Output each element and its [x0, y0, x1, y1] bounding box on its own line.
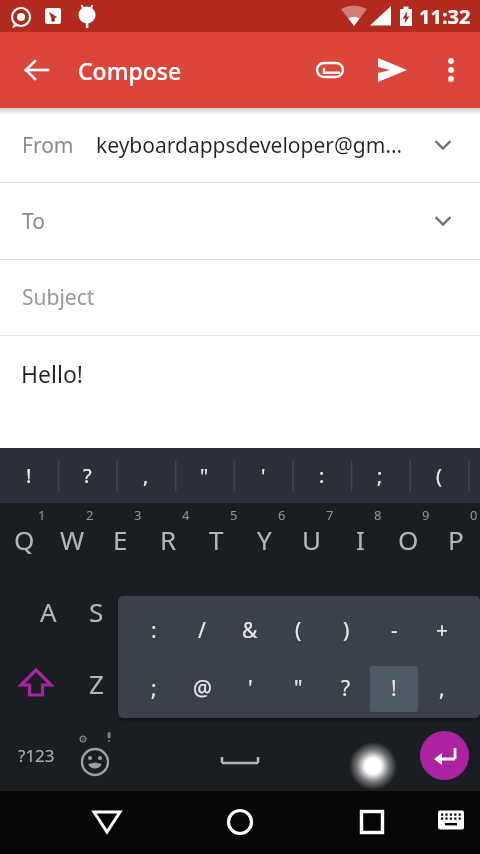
- button[interactable]: :: [130, 604, 178, 656]
- button[interactable]: [214, 796, 266, 848]
- staticText: 1: [38, 506, 46, 524]
- staticText: P: [448, 522, 464, 557]
- staticText: -: [391, 616, 398, 645]
- staticText: ): [343, 616, 350, 645]
- button[interactable]: P: [432, 503, 480, 575]
- button[interactable]: ;: [130, 662, 178, 714]
- staticText: T: [209, 522, 224, 557]
- staticText: &: [242, 616, 258, 645]
- button[interactable]: [346, 796, 398, 848]
- staticText: 6: [278, 506, 286, 524]
- button[interactable]: Hello!: [0, 336, 480, 448]
- staticText: ": [200, 462, 209, 489]
- staticText: From: [22, 131, 74, 160]
- button[interactable]: ,: [418, 662, 466, 714]
- button[interactable]: ?: [322, 662, 370, 714]
- staticText: U: [302, 522, 322, 557]
- staticText: 3: [134, 506, 142, 524]
- button[interactable]: O: [384, 503, 432, 575]
- staticText: Y: [257, 522, 272, 557]
- staticText: O: [398, 522, 419, 557]
- staticText: 4: [182, 506, 190, 524]
- staticText: To: [22, 207, 431, 236]
- button[interactable]: :: [293, 448, 351, 503]
- staticText: 0: [470, 506, 478, 524]
- button[interactable]: T: [192, 503, 240, 575]
- staticText: 8: [374, 506, 382, 524]
- button[interactable]: !: [0, 448, 58, 503]
- button[interactable]: ?: [58, 448, 116, 503]
- staticText: Hello!: [21, 358, 83, 389]
- button[interactable]: ;: [351, 448, 409, 503]
- button[interactable]: [14, 47, 60, 93]
- button[interactable]: /: [178, 604, 226, 656]
- staticText: ?: [341, 674, 351, 703]
- staticText: ": [294, 674, 303, 703]
- button[interactable]: @: [178, 662, 226, 714]
- button[interactable]: U: [288, 503, 336, 575]
- staticText: ,: [439, 674, 445, 703]
- staticText: ,: [143, 462, 149, 489]
- staticText: 11:32: [419, 3, 471, 30]
- button[interactable]: R: [144, 503, 192, 575]
- staticText: 5: [230, 506, 238, 524]
- staticText: ;: [151, 674, 157, 703]
- staticText: Q: [14, 522, 35, 557]
- button[interactable]: ': [226, 662, 274, 714]
- staticText: W: [60, 522, 85, 557]
- button[interactable]: From: [0, 108, 480, 182]
- button[interactable]: [428, 47, 474, 93]
- button[interactable]: +: [418, 604, 466, 656]
- staticText: ?123: [18, 744, 55, 767]
- staticText: :: [151, 616, 157, 645]
- button[interactable]: Y: [240, 503, 288, 575]
- button[interactable]: [81, 796, 133, 848]
- staticText: Z: [89, 666, 104, 701]
- staticText: Compose: [78, 55, 182, 86]
- button[interactable]: (: [410, 448, 468, 503]
- staticText: keyboardappsdeveloper@gm…: [96, 131, 431, 160]
- staticText: 9: [422, 506, 430, 524]
- button[interactable]: ": [274, 662, 322, 714]
- button[interactable]: &: [226, 604, 274, 656]
- staticText: ;: [377, 462, 383, 489]
- button[interactable]: ': [234, 448, 292, 503]
- button[interactable]: I: [336, 503, 384, 575]
- staticText: ': [261, 462, 266, 489]
- button[interactable]: !: [370, 662, 418, 714]
- button[interactable]: [427, 796, 475, 844]
- staticText: 2: [86, 506, 94, 524]
- button[interactable]: To: [0, 183, 480, 259]
- staticText: (: [436, 462, 442, 489]
- button[interactable]: A: [24, 575, 72, 647]
- staticText: ': [248, 674, 253, 703]
- button[interactable]: [0, 647, 72, 719]
- staticText: A: [40, 594, 57, 629]
- button[interactable]: ,: [117, 448, 175, 503]
- button[interactable]: [420, 731, 469, 780]
- button[interactable]: Z: [72, 647, 120, 719]
- staticText: (: [295, 616, 302, 645]
- button[interactable]: ): [322, 604, 370, 656]
- staticText: R: [160, 522, 177, 557]
- button[interactable]: [120, 719, 360, 791]
- button[interactable]: Subject: [0, 260, 480, 335]
- staticText: !: [391, 674, 397, 703]
- staticText: I: [356, 522, 365, 557]
- button[interactable]: [307, 47, 353, 93]
- button[interactable]: -: [370, 604, 418, 656]
- button[interactable]: W: [48, 503, 96, 575]
- button[interactable]: [72, 719, 120, 791]
- button[interactable]: [369, 47, 415, 93]
- staticText: @: [193, 674, 212, 703]
- button[interactable]: Q: [0, 503, 48, 575]
- staticText: 7: [326, 506, 334, 524]
- staticText: E: [113, 522, 128, 557]
- button[interactable]: S: [72, 575, 120, 647]
- button[interactable]: ?123: [0, 719, 72, 791]
- staticText: ?: [83, 462, 92, 489]
- button[interactable]: (: [274, 604, 322, 656]
- button[interactable]: E: [96, 503, 144, 575]
- button[interactable]: ": [175, 448, 233, 503]
- staticText: +: [436, 616, 449, 645]
